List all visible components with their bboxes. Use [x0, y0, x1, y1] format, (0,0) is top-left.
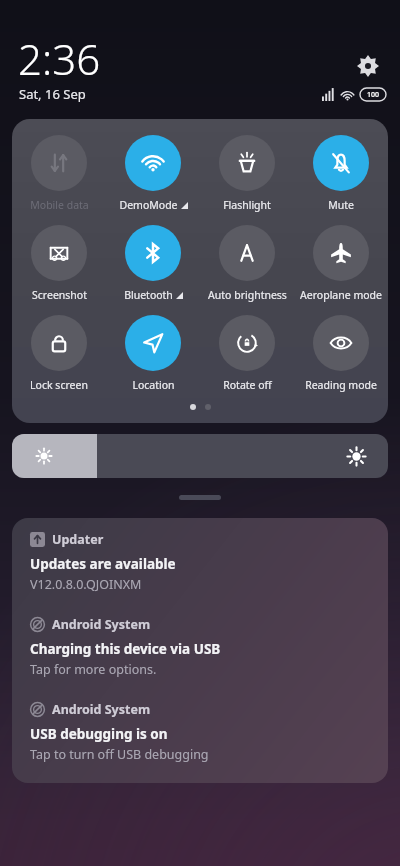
- staticText: Lock screen: [30, 378, 88, 392]
- staticText: Reading mode: [305, 378, 377, 392]
- staticText: Aeroplane mode: [300, 288, 382, 302]
- staticText: Rotate off: [223, 378, 272, 392]
- button[interactable]: Android System: [12, 603, 388, 688]
- button[interactable]: Mobile data: [12, 133, 106, 223]
- button[interactable]: Auto brightness: [200, 223, 294, 313]
- staticText: Android System: [52, 616, 151, 633]
- button[interactable]: Mute: [294, 133, 388, 223]
- staticText: Tap to turn off USB debugging: [30, 746, 209, 763]
- staticText: 2:36: [18, 30, 101, 87]
- staticText: 100: [367, 90, 380, 100]
- button[interactable]: DemoMode: [106, 133, 200, 223]
- button[interactable]: Location: [106, 313, 200, 403]
- staticText: V12.0.8.0.QJOINXM: [30, 576, 142, 593]
- button[interactable]: Flashlight: [200, 133, 294, 223]
- button[interactable]: Lock screen: [12, 313, 106, 403]
- staticText: Android System: [52, 701, 151, 718]
- staticText: Location: [132, 378, 175, 392]
- staticText: USB debugging is on: [30, 725, 168, 743]
- staticText: Updater: [52, 531, 104, 548]
- staticText: Mobile data: [30, 198, 89, 212]
- button[interactable]: Android System: [12, 688, 388, 773]
- button[interactable]: Settings: [350, 48, 386, 84]
- staticText: Screenshot: [32, 288, 87, 302]
- staticText: Sat, 16 Sep: [19, 85, 86, 103]
- button[interactable]: Rotate off: [200, 313, 294, 403]
- button[interactable]: Screenshot: [12, 223, 106, 313]
- button[interactable]: Bluetooth: [106, 223, 200, 313]
- staticText: Charging this device via USB: [30, 640, 221, 658]
- staticText: DemoMode: [119, 198, 178, 212]
- button[interactable]: Aeroplane mode: [294, 223, 388, 313]
- staticText: Updates are available: [30, 555, 176, 573]
- staticText: Mute: [328, 198, 354, 212]
- staticText: Bluetooth: [124, 288, 173, 302]
- button[interactable]: Brightness: [12, 434, 388, 478]
- button[interactable]: Updater: [12, 518, 388, 603]
- staticText: Tap for more options.: [30, 661, 157, 678]
- staticText: Auto brightness: [208, 288, 287, 302]
- staticText: Flashlight: [223, 198, 271, 212]
- button[interactable]: Reading mode: [294, 313, 388, 403]
